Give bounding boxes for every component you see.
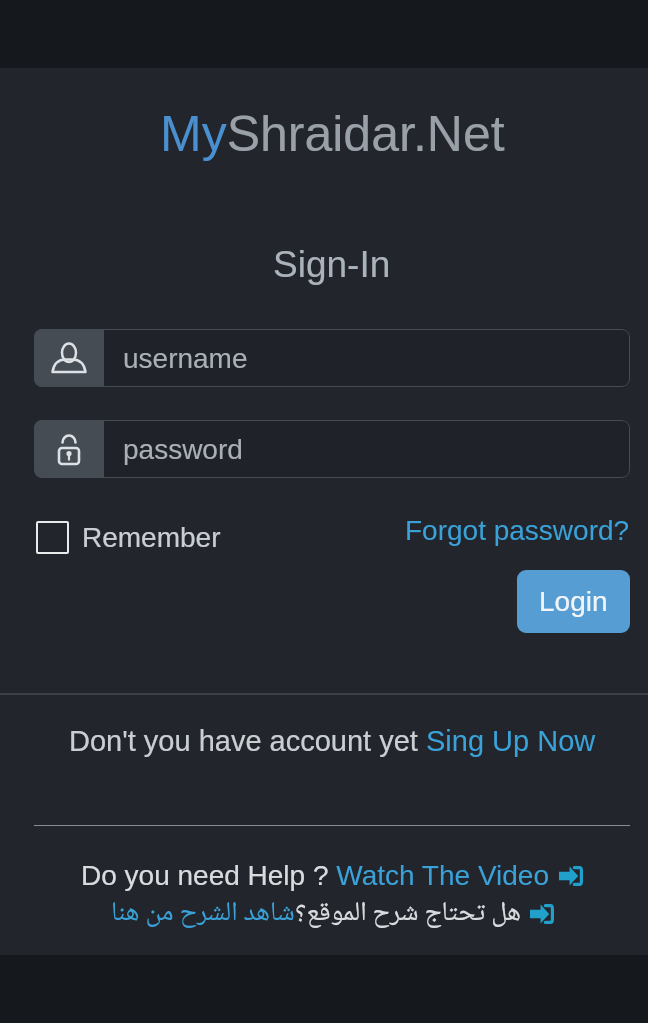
button[interactable]: username — [34, 329, 630, 387]
button[interactable]: Forgot password? — [405, 515, 630, 546]
staticText: MyShraidar.Net — [160, 106, 505, 162]
button[interactable]: شاهد الشرح من هنا — [34, 891, 630, 937]
button[interactable]: Remember — [36, 521, 221, 554]
button[interactable]: Login — [517, 570, 630, 633]
button[interactable]: Do you need Help ? Watch The Video — [34, 860, 630, 891]
button[interactable]: Don't you have account yet Sing Up Now — [69, 725, 596, 757]
staticText: Do you need Help ? Watch The Video — [81, 860, 550, 891]
staticText: username — [123, 343, 248, 374]
button[interactable]: password — [34, 420, 630, 478]
staticText: Login — [539, 586, 608, 617]
staticText: شاهد الشرح من هنا — [111, 891, 295, 937]
staticText: password — [123, 434, 243, 465]
staticText: Sign-In — [273, 244, 391, 285]
staticText: Remember — [82, 522, 221, 553]
staticText: هل تحتاج شرح الموقع؟ — [295, 891, 522, 937]
